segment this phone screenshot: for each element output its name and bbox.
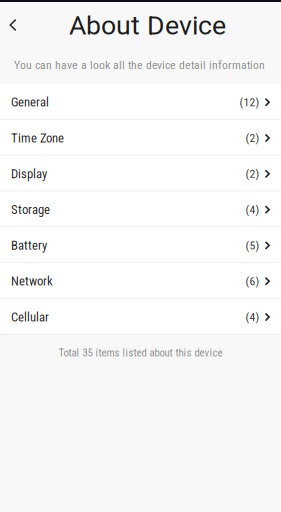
staticText: (12)	[240, 95, 260, 109]
staticText: You can have a look all the device detai…	[14, 58, 265, 72]
staticText: (5)	[246, 239, 260, 252]
staticText: Network	[11, 274, 53, 289]
button[interactable]: Cellular	[0, 299, 281, 335]
staticText: (2)	[246, 167, 260, 181]
button[interactable]: Storage	[0, 191, 281, 227]
button[interactable]: Time Zone	[0, 120, 281, 156]
staticText: (6)	[246, 274, 260, 288]
button[interactable]: Display	[0, 156, 281, 191]
staticText: Display	[11, 166, 47, 181]
staticText: Storage	[11, 202, 50, 217]
staticText: Cellular	[11, 310, 49, 324]
staticText: (4)	[246, 310, 260, 324]
button[interactable]: General	[0, 84, 281, 120]
button[interactable]: Network	[0, 263, 281, 299]
staticText: Time Zone	[11, 131, 64, 145]
button[interactable]: Back	[0, 7, 26, 41]
staticText: (4)	[246, 203, 260, 217]
staticText: About Device	[69, 10, 226, 41]
staticText: (2)	[246, 131, 260, 145]
button[interactable]: Battery	[0, 227, 281, 263]
staticText: Total 35 items listed about this device	[58, 346, 222, 359]
staticText: Battery	[11, 238, 47, 253]
staticText: General	[11, 95, 49, 110]
